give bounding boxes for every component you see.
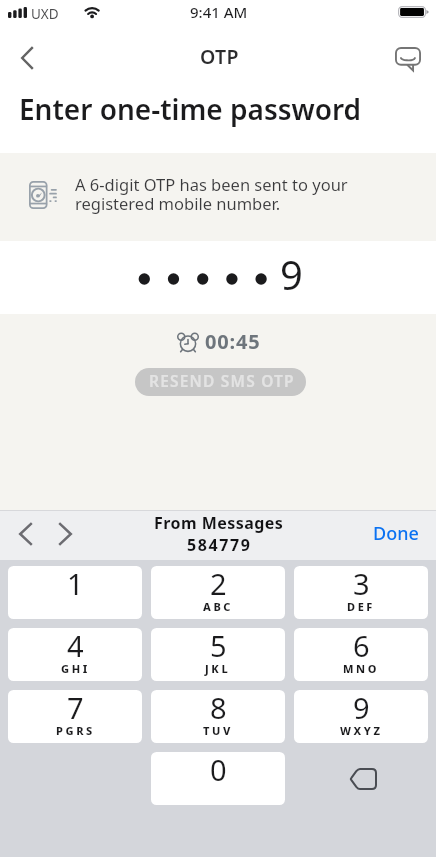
- staticText: 2: [210, 566, 227, 603]
- button[interactable]: 3: [294, 566, 428, 619]
- staticText: MNO: [343, 661, 380, 676]
- button[interactable]: 0: [151, 752, 285, 805]
- button[interactable]: 4: [8, 628, 142, 681]
- staticText: DEF: [347, 599, 375, 614]
- staticText: 00:45: [205, 328, 261, 355]
- button[interactable]: RESEND SMS OTP: [135, 368, 306, 396]
- button[interactable]: 5: [151, 628, 285, 681]
- staticText: RESEND SMS OTP: [149, 370, 295, 391]
- button[interactable]: Next field: [43, 512, 86, 555]
- staticText: 6: [353, 628, 370, 665]
- staticText: 9:41 AM: [190, 2, 248, 22]
- staticText: 1: [67, 566, 84, 603]
- button[interactable]: 8: [151, 690, 285, 743]
- button[interactable]: Delete: [294, 752, 428, 805]
- staticText: 9: [353, 690, 370, 727]
- staticText: OTP: [200, 43, 239, 70]
- staticText: UXD: [31, 5, 59, 23]
- staticText: 7: [67, 690, 84, 727]
- staticText: PGRS: [56, 723, 95, 738]
- staticText: ABC: [203, 599, 234, 614]
- button[interactable]: Done: [357, 511, 435, 556]
- button[interactable]: 7: [8, 690, 142, 743]
- staticText: 3: [353, 566, 370, 603]
- button[interactable]: Support chat: [384, 34, 432, 82]
- button[interactable]: 9: [294, 690, 428, 743]
- staticText: WXYZ: [340, 723, 383, 738]
- staticText: 0: [210, 752, 227, 789]
- staticText: GHI: [61, 661, 90, 676]
- button[interactable]: 2: [151, 566, 285, 619]
- button[interactable]: Back: [3, 34, 51, 82]
- staticText: From Messages: [154, 512, 284, 534]
- staticText: Done: [373, 521, 419, 546]
- staticText: Enter one-time password: [19, 90, 362, 128]
- button[interactable]: 1: [8, 566, 142, 619]
- button[interactable]: 6: [294, 628, 428, 681]
- staticText: 584779: [187, 534, 252, 556]
- staticText: 8: [210, 690, 227, 727]
- staticText: 9: [277, 247, 306, 301]
- button[interactable]: Previous field: [4, 512, 47, 555]
- staticText: 5: [210, 628, 227, 665]
- staticText: TUV: [203, 723, 233, 738]
- staticText: A 6-digit OTP has been sent to your regi…: [75, 173, 348, 215]
- staticText: JKL: [205, 661, 231, 676]
- staticText: 4: [67, 628, 84, 665]
